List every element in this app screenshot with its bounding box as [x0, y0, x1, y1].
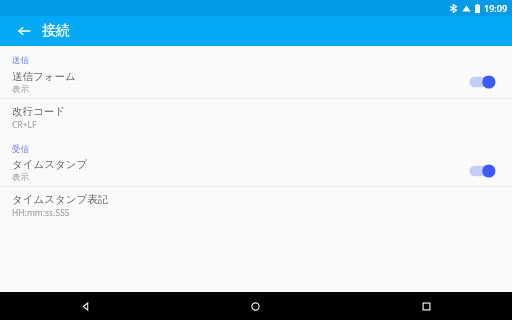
button[interactable]: タイムスタンプ [0, 155, 512, 186]
staticText: HH:mm:ss.SSS [12, 207, 70, 219]
button[interactable]: Toggle [466, 72, 498, 92]
button[interactable]: Back [0, 292, 170, 320]
button[interactable]: タイムスタンプ表記 [0, 187, 512, 224]
button[interactable]: Home [170, 292, 341, 320]
staticText: タイムスタンプ [12, 158, 88, 171]
staticText: 接続 [42, 22, 70, 40]
button[interactable]: 送信フォーム [0, 66, 512, 98]
button[interactable]: 改行コード [0, 99, 512, 136]
staticText: 送信 [12, 55, 29, 66]
button[interactable]: Recents [341, 292, 512, 320]
staticText: CR+LF [12, 119, 37, 131]
staticText: タイムスタンプ表記 [12, 193, 109, 206]
staticText: 受信 [12, 144, 29, 155]
button[interactable]: Toggle [466, 161, 498, 181]
button[interactable]: Back [13, 20, 35, 42]
staticText: 送信フォーム [12, 70, 76, 83]
staticText: 19:09 [484, 2, 508, 14]
staticText: 表示 [12, 172, 29, 183]
staticText: 表示 [12, 84, 29, 95]
staticText: 改行コード [12, 105, 65, 118]
